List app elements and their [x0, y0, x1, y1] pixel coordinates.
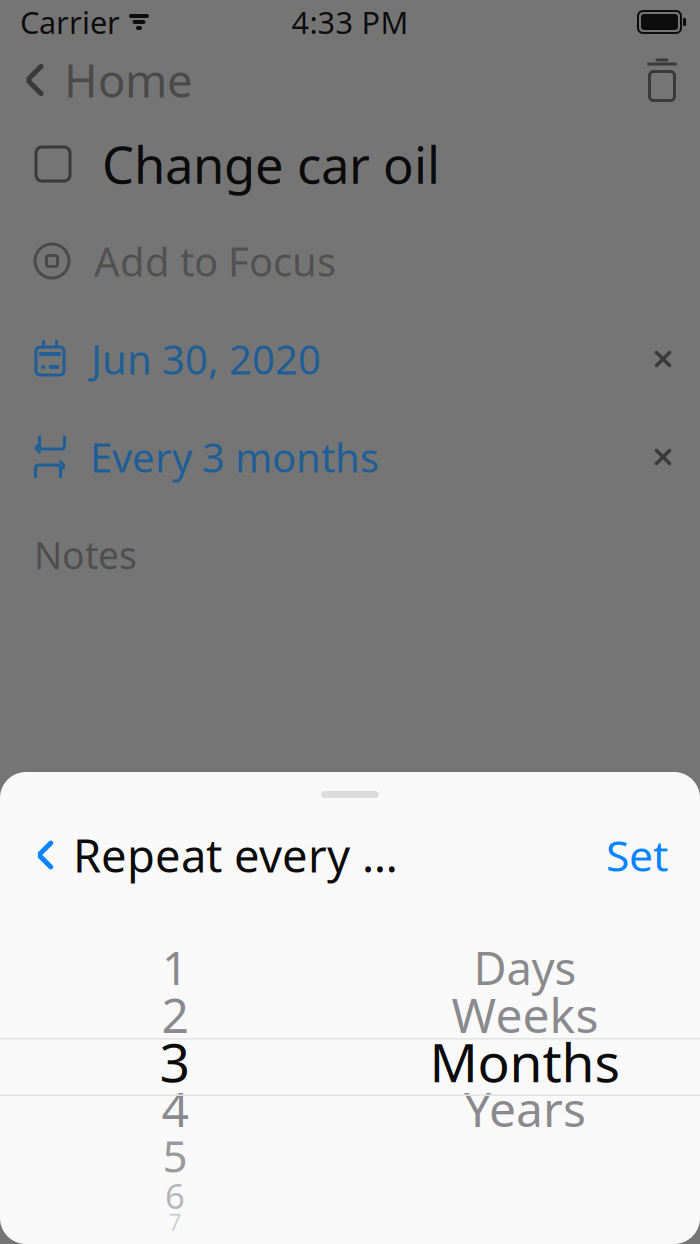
button[interactable]: Mark complete [28, 139, 78, 189]
button[interactable]: Set [574, 818, 700, 892]
staticText: Weeks [451, 983, 598, 1046]
staticText: Home [64, 50, 193, 110]
button[interactable]: Add to Focus [0, 212, 700, 310]
button[interactable]: Delete task [624, 44, 700, 116]
staticText: 3 [159, 1026, 190, 1097]
staticText: Add to Focus [94, 234, 336, 287]
staticText: 4 [161, 1077, 188, 1140]
staticText: 7 [168, 1207, 181, 1237]
staticText: Repeat every … [73, 825, 398, 885]
staticText: Carrier [20, 2, 120, 42]
button[interactable]: Every 3 months [0, 408, 379, 506]
button[interactable]: Home [0, 44, 215, 116]
staticText: 1 [162, 937, 188, 998]
button[interactable]: Remove due date [626, 310, 700, 408]
staticText: Jun 30, 2020 [91, 332, 321, 385]
button[interactable]: Repeat every … [0, 818, 398, 892]
button[interactable]: Remove repeat [626, 408, 700, 506]
staticText: 4:33 PM [291, 2, 408, 42]
button[interactable]: Jun 30, 2020 [0, 310, 321, 408]
staticText: Years [464, 1077, 586, 1140]
staticText: Change car oil [102, 130, 440, 198]
staticText: Days [473, 937, 576, 998]
staticText: 6 [165, 1172, 185, 1218]
staticText: Notes [34, 530, 137, 580]
staticText: Months [429, 1026, 620, 1097]
staticText: 2 [161, 983, 188, 1046]
staticText: 5 [162, 1126, 187, 1185]
staticText: Set [606, 827, 668, 883]
staticText: Every 3 months [90, 430, 379, 483]
